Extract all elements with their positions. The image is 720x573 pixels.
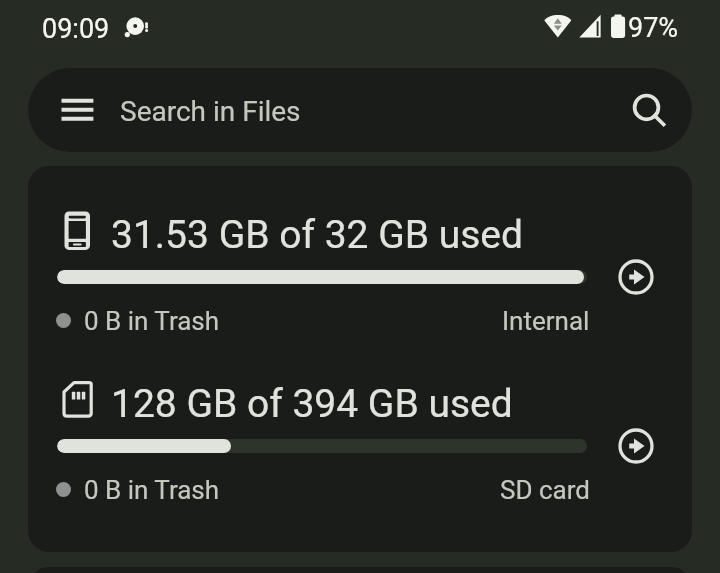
staticText: Search in Files [120, 95, 301, 128]
staticText: 0 B in Trash [84, 306, 220, 336]
staticText: 0 B in Trash [84, 475, 220, 505]
staticText: 128 GB of 394 GB used [111, 381, 513, 427]
staticText: 97% [628, 12, 679, 44]
staticText: Internal [502, 306, 590, 336]
button[interactable]: Search [614, 72, 684, 142]
staticText: 09:09 [42, 13, 110, 45]
staticText: 31.53 GB of 32 GB used [111, 212, 523, 258]
staticText: SD card [500, 475, 590, 505]
button[interactable]: Browse Internal storage [612, 253, 660, 301]
button[interactable]: 31.53 GB of 32 GB used [28, 166, 692, 335]
button[interactable]: 128 GB of 394 GB used [28, 335, 692, 504]
button[interactable]: Browse SD card storage [612, 422, 660, 470]
button[interactable]: Open navigation drawer [42, 75, 112, 145]
button[interactable]: Open navigation drawer [28, 68, 692, 152]
